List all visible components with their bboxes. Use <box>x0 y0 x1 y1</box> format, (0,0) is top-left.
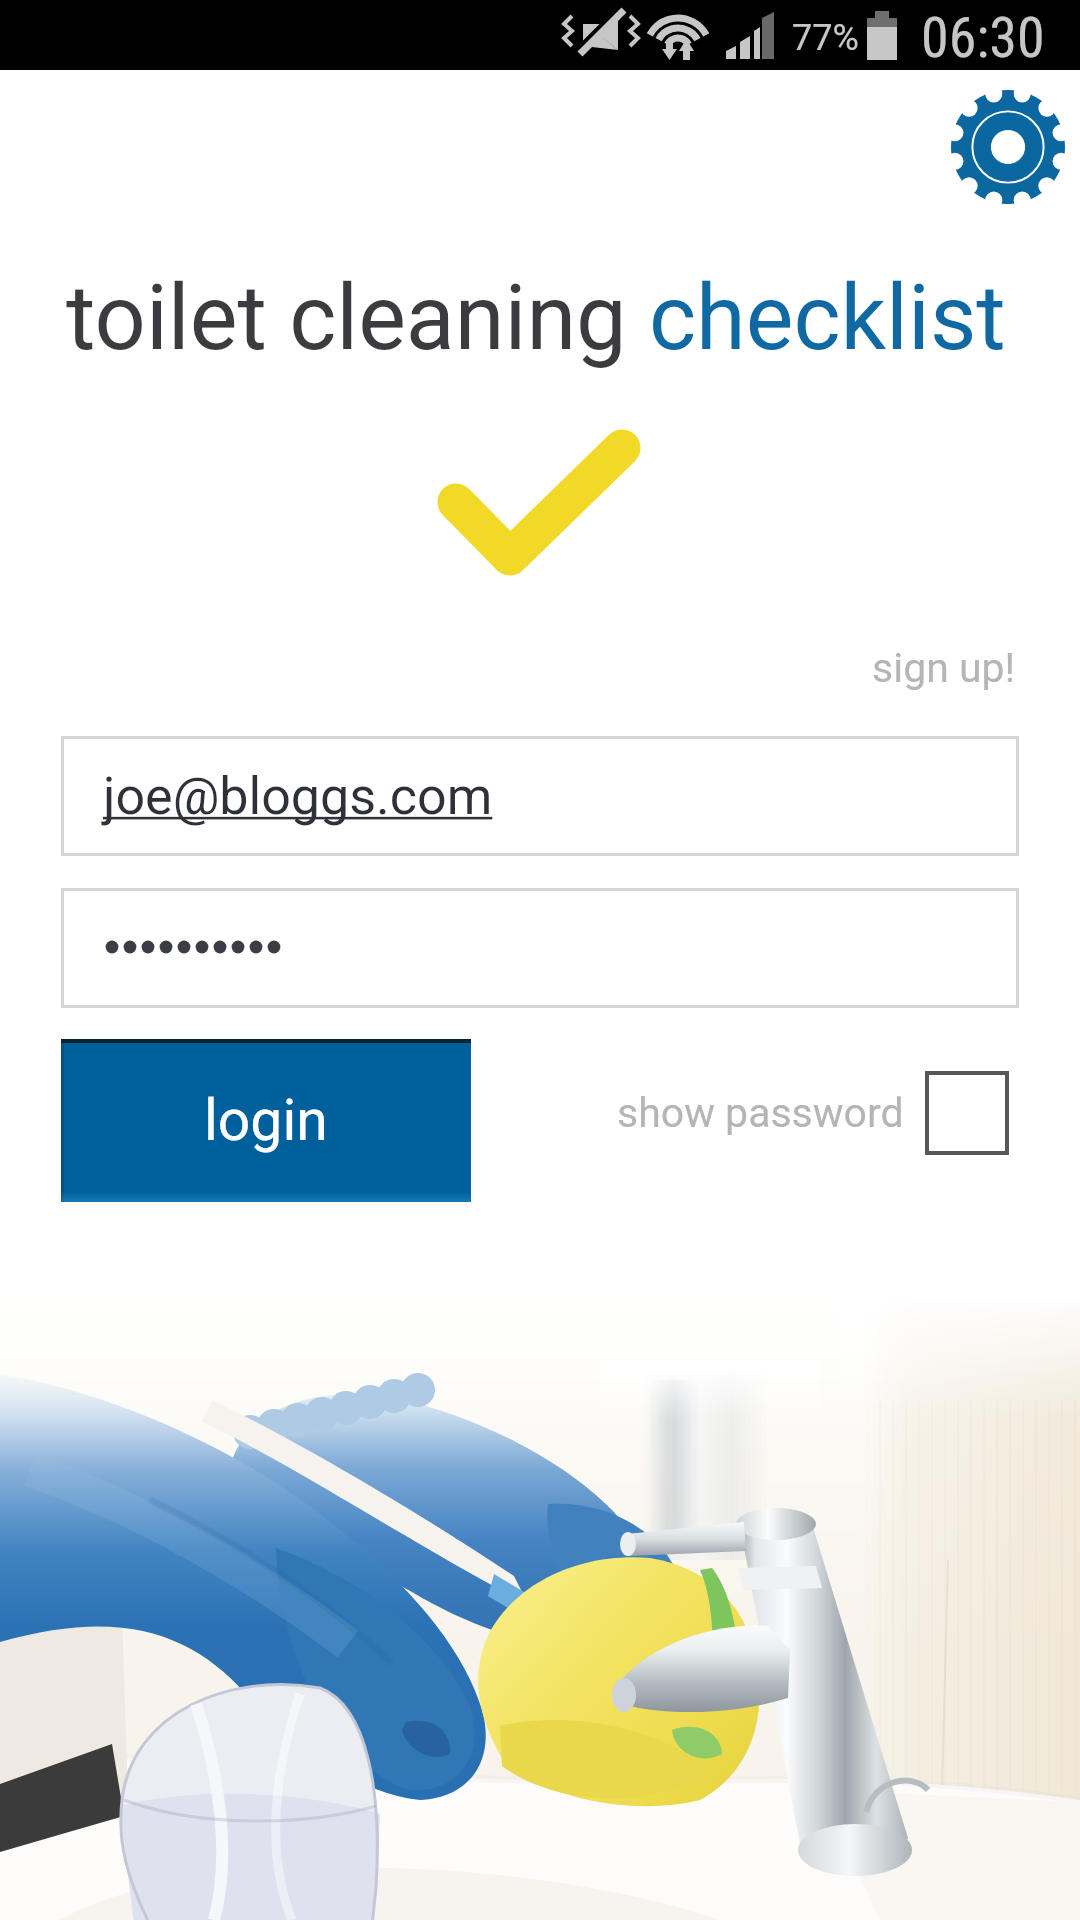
staticText: show password <box>617 1089 904 1137</box>
staticText: 77% <box>792 17 859 59</box>
staticText: login <box>204 1087 328 1154</box>
button[interactable]: show password <box>617 1065 1009 1161</box>
button[interactable]: Settings <box>951 90 1065 204</box>
staticText: sign up! <box>872 644 1016 692</box>
staticText: 06:30 <box>921 5 1045 71</box>
staticText: toilet cleaning checklist <box>66 266 1006 371</box>
button[interactable]: joe@bloggs.com <box>61 736 1019 856</box>
button[interactable]: sign up! <box>860 630 1024 700</box>
staticText: joe@bloggs.com <box>103 766 493 827</box>
button[interactable]: login <box>61 1039 471 1202</box>
button[interactable] <box>61 888 1019 1008</box>
